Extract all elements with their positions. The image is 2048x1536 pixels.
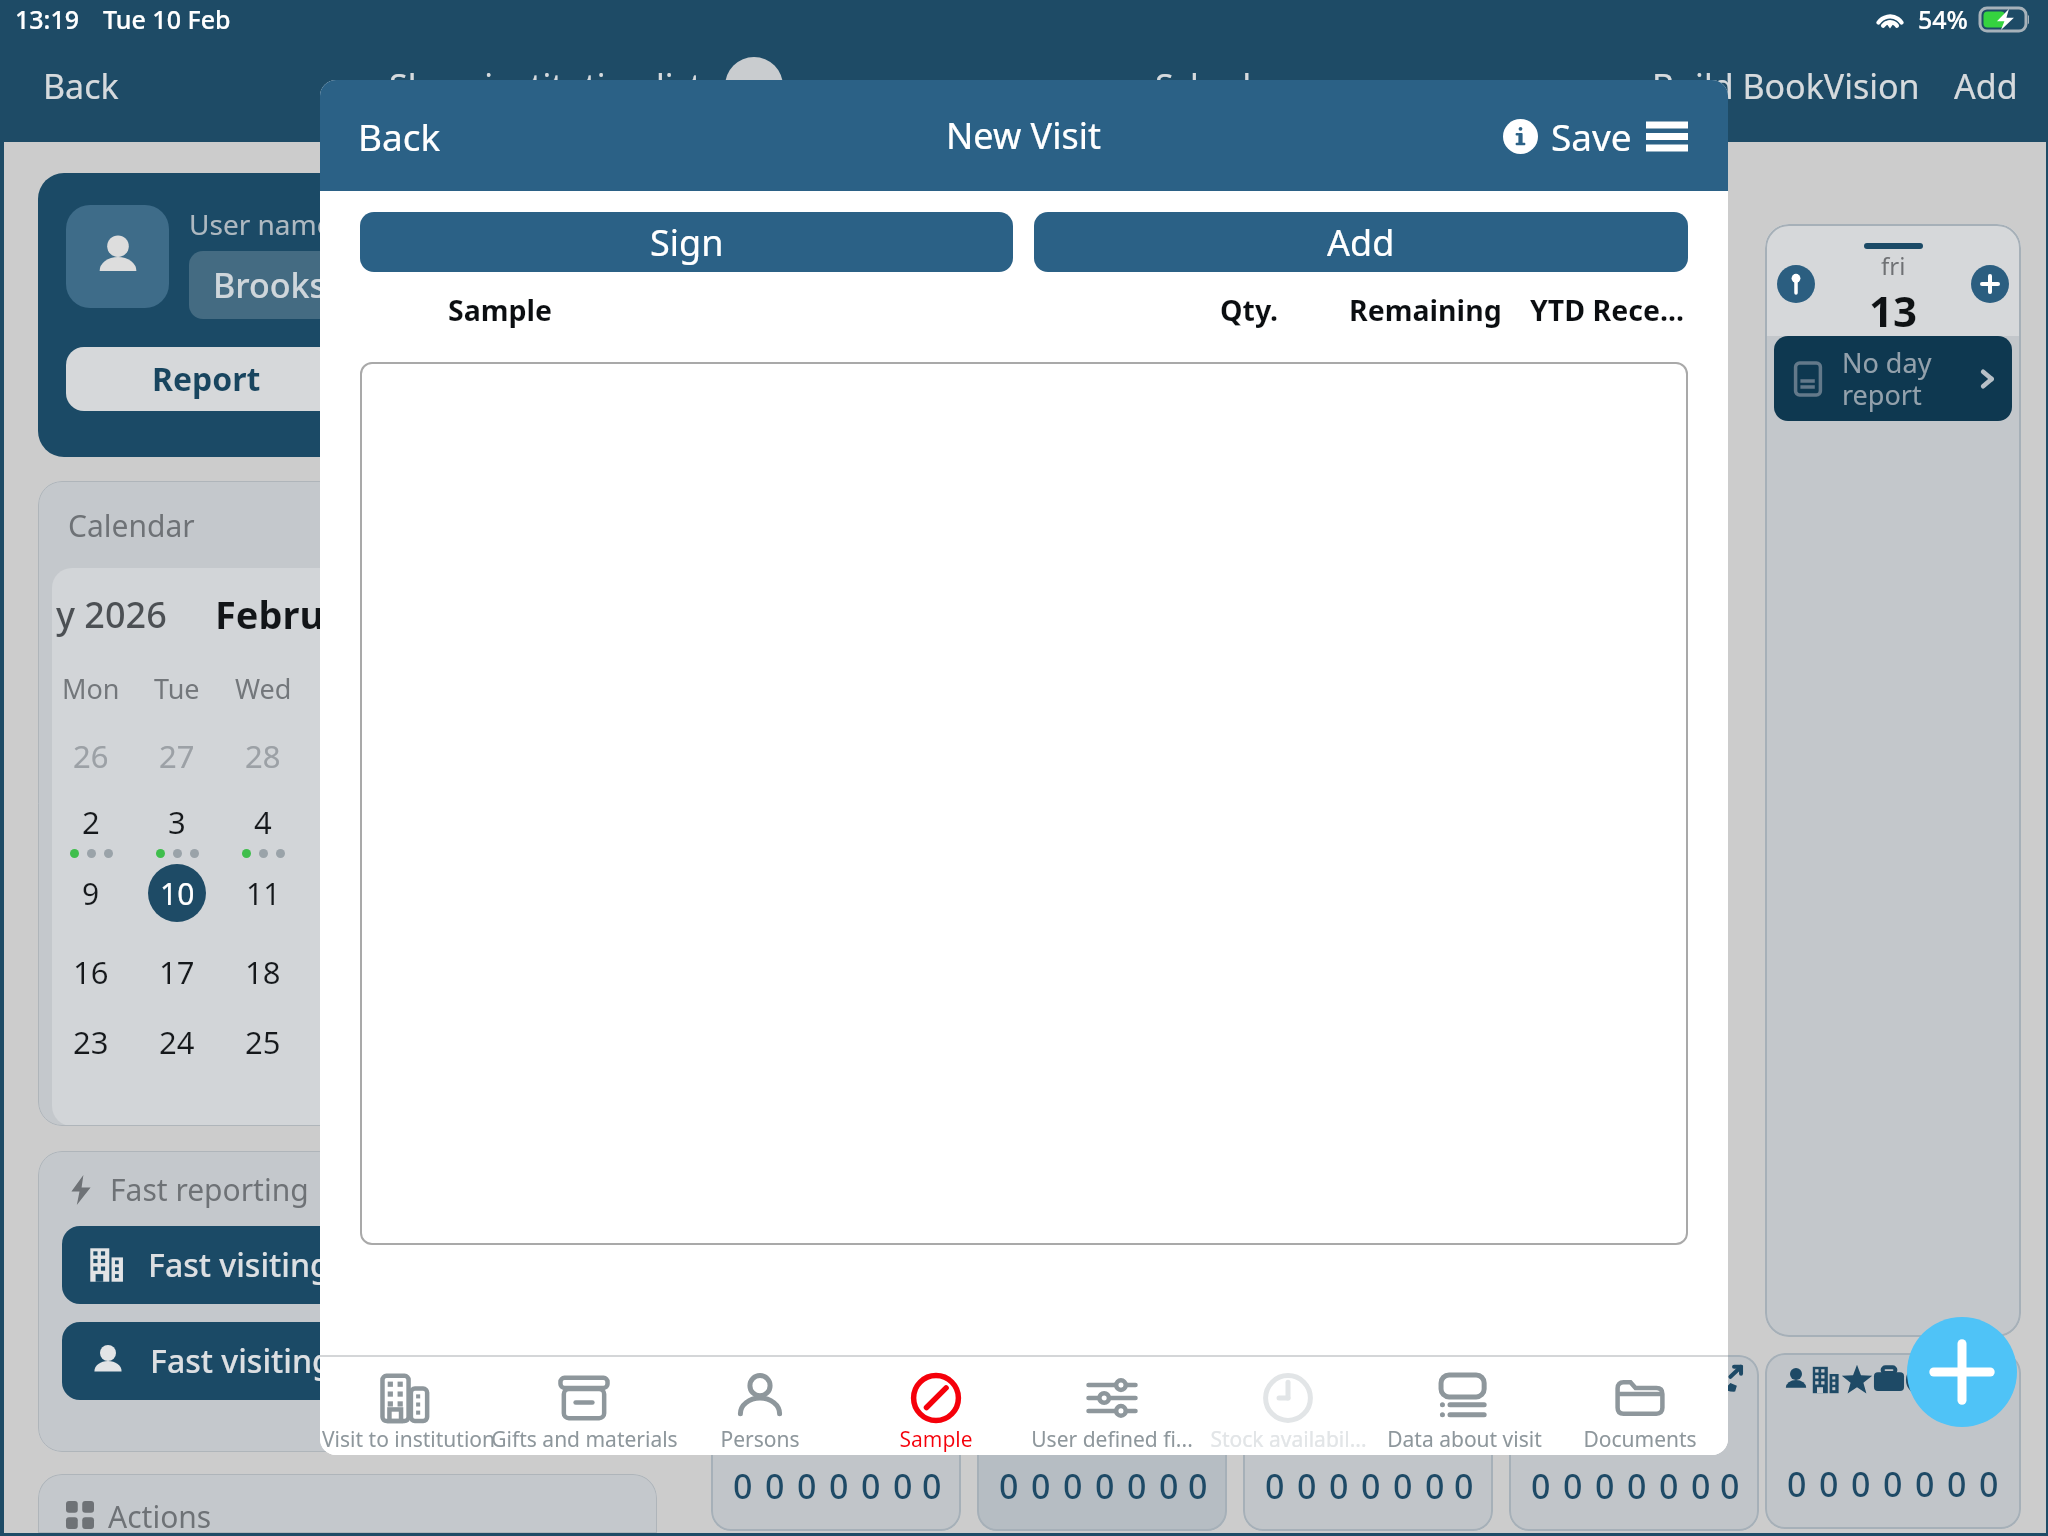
staticText: Wed [235, 670, 292, 707]
staticText: 0 [829, 1463, 849, 1509]
staticText: Fast reporting [110, 1169, 309, 1210]
button[interactable]: Gifts and materials [496, 1355, 672, 1455]
staticText: 11 [246, 873, 281, 914]
staticText: 0 [1393, 1463, 1413, 1509]
staticText: 0 [1595, 1463, 1615, 1509]
button[interactable]: Back [358, 111, 441, 161]
button[interactable]: Stock availabil... [1200, 1355, 1376, 1455]
staticText: 0 [797, 1463, 817, 1509]
staticText: 0 [1159, 1463, 1179, 1509]
staticText: 13:19 [15, 2, 80, 36]
button[interactable]: Pin [1777, 265, 1815, 303]
button[interactable]: User defined fi... [1024, 1355, 1200, 1455]
staticText: Fast visiting o [148, 1243, 358, 1287]
staticText: 0 [922, 1463, 942, 1509]
staticText: 27 [159, 735, 195, 777]
staticText: Remaining [1349, 291, 1502, 330]
staticText: 0 [1531, 1463, 1551, 1509]
staticText: 0 [1454, 1463, 1474, 1509]
staticText: 0 [1979, 1461, 1999, 1507]
button[interactable]: 0 [711, 1355, 961, 1531]
staticText: 25 [245, 1021, 281, 1063]
staticText: Documents [1583, 1425, 1697, 1454]
staticText: 0 [1819, 1461, 1839, 1507]
button[interactable]: Fast visiting o [62, 1226, 657, 1304]
staticText: Back [358, 111, 441, 161]
button[interactable]: Report [66, 347, 346, 411]
staticText: 13 [1869, 282, 1918, 336]
button[interactable]: 0 [1765, 1353, 2021, 1529]
button[interactable]: Menu [1646, 115, 1688, 157]
button[interactable]: Data about visit [1376, 1355, 1552, 1455]
button[interactable]: 0 [1509, 1355, 1759, 1531]
staticText: 0 [1691, 1463, 1711, 1509]
staticText: 0 [1329, 1463, 1349, 1509]
staticText: Build BookVision [1652, 63, 1920, 109]
staticText: 0 [893, 1463, 913, 1509]
button[interactable]: Add [1034, 212, 1688, 272]
staticText: 0 [1297, 1463, 1317, 1509]
staticText: 0 [733, 1463, 753, 1509]
button[interactable]: Persons [672, 1355, 848, 1455]
staticText: 28 [245, 735, 281, 777]
staticText: YTD Rece... [1530, 291, 1685, 330]
staticText: 4 [254, 801, 272, 843]
staticText: 0 [1883, 1461, 1903, 1507]
staticText: 0 [1659, 1463, 1679, 1509]
staticText: Tue 10 Feb [103, 2, 231, 36]
staticText: 0 [1095, 1463, 1115, 1509]
staticText: 24 [159, 1021, 195, 1063]
staticText: 18 [245, 951, 281, 993]
staticText: 3 [168, 801, 186, 843]
staticText: 0 [765, 1463, 785, 1509]
staticText: 2 [82, 801, 100, 843]
button[interactable]: No day report [1774, 336, 2012, 421]
staticText: 16 [73, 951, 109, 993]
staticText: Sample [899, 1425, 973, 1454]
staticText: 0 [1188, 1463, 1208, 1509]
staticText: Febru [215, 588, 325, 640]
button[interactable]: Back [43, 63, 119, 109]
button[interactable]: 0 [977, 1355, 1227, 1531]
staticText: 0 [1063, 1463, 1083, 1509]
staticText: 0 [1947, 1461, 1967, 1507]
button[interactable]: Sign [360, 212, 1013, 272]
button[interactable]: Visit to institution [320, 1355, 496, 1455]
button[interactable]: Fast visiting o [62, 1322, 657, 1400]
staticText: 10 [160, 873, 195, 914]
staticText: 9 [82, 873, 100, 914]
button[interactable]: Add [1907, 1317, 2017, 1427]
staticText: Show institution list [389, 63, 703, 109]
staticText: Back [43, 63, 119, 109]
button[interactable]: Save [1551, 111, 1632, 161]
button[interactable]: Add [1954, 63, 2018, 109]
staticText: 0 [1425, 1463, 1445, 1509]
staticText: Sign [650, 218, 724, 267]
button[interactable]: Add day [1971, 265, 2009, 303]
button[interactable]: Documents [1552, 1355, 1728, 1455]
staticText: Actions [108, 1496, 212, 1533]
staticText: 0 [1720, 1463, 1740, 1509]
staticText: Fast visiting o [150, 1339, 360, 1383]
staticText: Add [1327, 218, 1395, 267]
staticText: No day report [1842, 344, 1932, 413]
staticText: Sched... [1155, 63, 1279, 109]
staticText: 0 [861, 1463, 881, 1509]
staticText: 0 [1031, 1463, 1051, 1509]
button[interactable]: Info [1503, 119, 1538, 154]
staticText: Persons [720, 1425, 800, 1454]
staticText: Add [1954, 63, 2018, 109]
staticText: Calendar [68, 505, 195, 546]
staticText: Data about visit [1387, 1425, 1542, 1454]
staticText: y 2026 [56, 590, 167, 639]
staticText: fri [1881, 249, 1906, 282]
button[interactable]: Sample [848, 1355, 1024, 1455]
button[interactable]: 0 [1243, 1355, 1493, 1531]
staticText: Gifts and materials [491, 1425, 678, 1454]
staticText: 0 [1627, 1463, 1647, 1509]
staticText: User name [189, 205, 333, 243]
staticText: Mon [62, 670, 120, 707]
staticText: 0 [1851, 1461, 1871, 1507]
staticText: 0 [1361, 1463, 1381, 1509]
staticText: Save [1551, 111, 1632, 161]
